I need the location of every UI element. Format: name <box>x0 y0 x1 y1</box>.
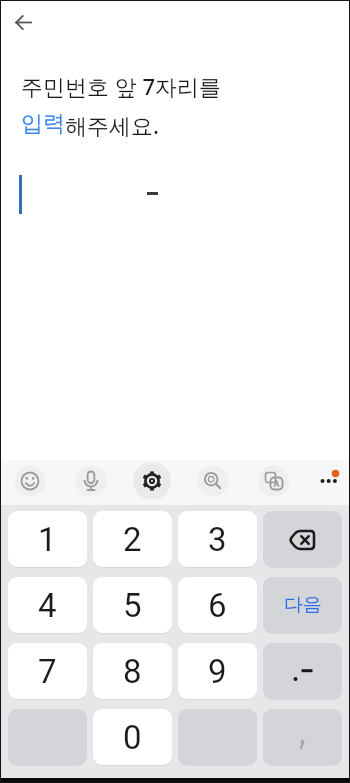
staticText: 8 <box>123 652 142 691</box>
button[interactable] <box>118 460 176 505</box>
staticText: 다음 <box>284 593 322 617</box>
staticText: 입력 <box>21 110 65 138</box>
button[interactable]: 0 <box>93 709 172 765</box>
staticText: 6 <box>208 586 227 625</box>
staticText: 7 <box>38 652 57 691</box>
button[interactable]: 2 <box>93 511 172 567</box>
button[interactable]: 8 <box>93 643 172 699</box>
button[interactable]: 9 <box>178 643 257 699</box>
button[interactable] <box>59 460 118 505</box>
button[interactable]: 6 <box>178 577 257 633</box>
staticText: 해주세요. <box>65 110 159 140</box>
button[interactable] <box>234 460 292 505</box>
button[interactable]: 4 <box>8 577 87 633</box>
staticText: 0 <box>123 718 142 757</box>
button[interactable]: 다음 <box>263 577 342 633</box>
staticText: 9 <box>208 652 227 691</box>
button[interactable]: 7 <box>8 643 87 699</box>
button[interactable] <box>263 643 342 699</box>
button[interactable]: 3 <box>178 511 257 567</box>
staticText: 4 <box>38 586 57 625</box>
button[interactable] <box>176 460 234 505</box>
button[interactable] <box>263 709 342 765</box>
staticText: 1 <box>38 520 57 559</box>
button[interactable]: 5 <box>93 577 172 633</box>
button[interactable] <box>4 4 40 40</box>
button[interactable] <box>0 460 59 505</box>
button[interactable] <box>292 460 350 505</box>
staticText: 3 <box>208 520 227 559</box>
button[interactable]: 1 <box>8 511 87 567</box>
button[interactable] <box>263 511 342 567</box>
staticText: 2 <box>123 520 142 559</box>
staticText: 5 <box>123 586 142 625</box>
staticText: 주민번호 앞 7자리를 <box>21 71 222 101</box>
